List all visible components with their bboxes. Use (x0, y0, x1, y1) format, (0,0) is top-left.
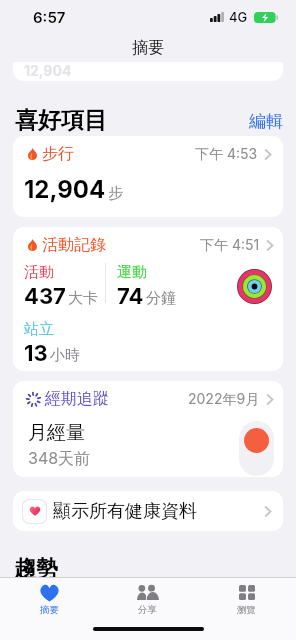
button[interactable]: 編輯 (249, 111, 283, 135)
staticText: 分鐘 (146, 289, 176, 308)
staticText: 步行 (42, 144, 74, 164)
staticText: 74 (117, 283, 144, 310)
button[interactable]: 瀏覽 (197, 578, 296, 622)
button[interactable]: 顯示所有健康資料 (13, 491, 283, 531)
button[interactable]: 活動記錄 (13, 227, 283, 371)
staticText: 13 (24, 340, 48, 367)
staticText: 運動 (117, 263, 147, 282)
button[interactable]: 摘要 (0, 578, 98, 622)
staticText: 437 (24, 283, 66, 310)
staticText: 下午 4:51 (200, 236, 260, 254)
staticText: 活動記錄 (42, 235, 106, 255)
staticText: 下午 4:53 (195, 145, 258, 163)
staticText: 月經量 (28, 421, 85, 445)
button[interactable]: 經期追蹤 (13, 381, 283, 477)
staticText: 4G (229, 9, 248, 25)
staticText: 12,904 (24, 175, 106, 204)
staticText: 2022年9月 (188, 390, 260, 408)
staticText: 摘要 (132, 38, 164, 58)
staticText: 大卡 (68, 289, 98, 308)
staticText: 趨勢 (14, 555, 58, 577)
staticText: 喜好項目 (15, 106, 107, 135)
staticText: 12,904 (24, 62, 72, 79)
staticText: 摘要 (40, 604, 59, 616)
button[interactable]: 分享 (98, 578, 197, 622)
staticText: 步 (108, 184, 123, 203)
staticText: 小時 (50, 346, 80, 365)
staticText: 站立 (24, 320, 54, 339)
staticText: 顯示所有健康資料 (53, 500, 197, 523)
staticText: 348天前 (28, 448, 91, 468)
staticText: 活動 (24, 263, 54, 282)
button[interactable]: 步行 (13, 136, 283, 217)
staticText: 經期追蹤 (45, 389, 109, 409)
staticText: 6:57 (33, 8, 66, 26)
staticText: 分享 (138, 604, 157, 616)
staticText: 瀏覽 (237, 604, 256, 616)
